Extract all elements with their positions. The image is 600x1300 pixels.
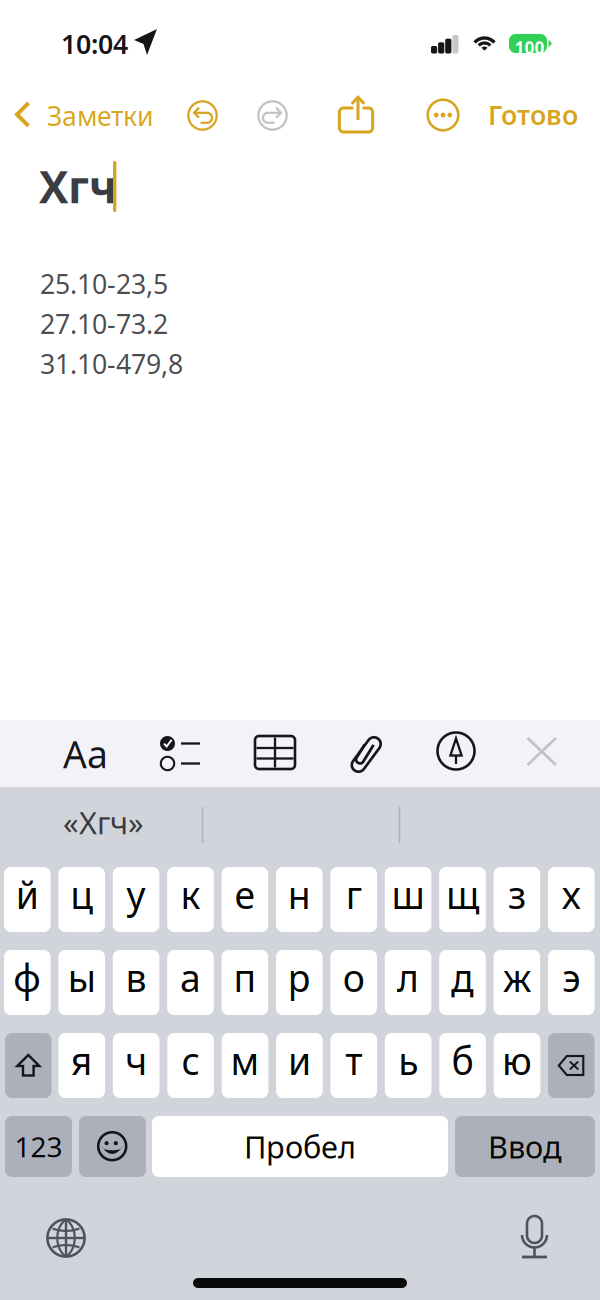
- button[interactable]: Markup: [435, 729, 479, 775]
- button[interactable]: д: [439, 950, 486, 1015]
- button[interactable]: н: [276, 867, 323, 932]
- staticText: р: [288, 953, 311, 1002]
- button[interactable]: г: [330, 867, 377, 932]
- button[interactable]: More options: [425, 97, 461, 133]
- button[interactable]: ы: [58, 950, 105, 1015]
- button[interactable]: Emoji: [79, 1116, 146, 1177]
- staticText: э: [562, 953, 580, 1002]
- button[interactable]: э: [548, 950, 595, 1015]
- button[interactable]: Checklist: [159, 734, 201, 772]
- button[interactable]: и: [276, 1033, 323, 1098]
- staticText: Aa: [63, 729, 108, 779]
- staticText: м: [230, 1036, 259, 1085]
- staticText: у: [127, 870, 146, 919]
- button[interactable]: з: [494, 867, 540, 932]
- staticText: ы: [68, 953, 96, 1002]
- button[interactable]: о: [330, 950, 377, 1015]
- staticText: ф: [13, 953, 41, 1002]
- button[interactable]: ч: [113, 1033, 159, 1098]
- button[interactable]: ю: [494, 1033, 540, 1098]
- staticText: к: [180, 870, 200, 919]
- staticText: г: [346, 870, 362, 919]
- button[interactable]: ц: [58, 867, 105, 932]
- staticText: ж: [503, 953, 531, 1002]
- button[interactable]: Switch keyboard: [46, 1218, 86, 1258]
- staticText: л: [397, 953, 419, 1002]
- button[interactable]: Пробел: [152, 1116, 448, 1177]
- staticText: и: [288, 1036, 311, 1085]
- staticText: 100: [514, 36, 544, 59]
- staticText: с: [182, 1036, 200, 1085]
- button[interactable]: а: [167, 950, 214, 1015]
- button[interactable]: Table: [255, 736, 296, 770]
- button[interactable]: Aa: [63, 729, 117, 779]
- button[interactable]: п: [222, 950, 268, 1015]
- button[interactable]: й: [4, 867, 51, 932]
- staticText: Хгч: [39, 157, 117, 215]
- button[interactable]: я: [58, 1033, 105, 1098]
- staticText: 31.10-479,8: [40, 346, 183, 381]
- button[interactable]: ь: [385, 1033, 431, 1098]
- staticText: ц: [70, 870, 93, 919]
- staticText: щ: [446, 870, 479, 919]
- button[interactable]: в: [113, 950, 159, 1015]
- button[interactable]: Share: [343, 93, 379, 139]
- button[interactable]: м: [222, 1033, 268, 1098]
- staticText: я: [71, 1036, 93, 1085]
- staticText: а: [180, 953, 201, 1002]
- staticText: 27.10-73.2: [40, 306, 168, 341]
- staticText: 123: [14, 1128, 62, 1165]
- button[interactable]: Заметки: [6, 92, 158, 137]
- button[interactable]: к: [167, 867, 214, 932]
- staticText: т: [345, 1036, 362, 1085]
- staticText: ч: [125, 1036, 147, 1085]
- staticText: ю: [502, 1036, 532, 1085]
- button[interactable]: т: [330, 1033, 377, 1098]
- button[interactable]: Delete: [548, 1033, 595, 1098]
- staticText: в: [126, 953, 147, 1002]
- staticText: е: [234, 870, 255, 919]
- staticText: й: [16, 870, 39, 919]
- button[interactable]: Готово: [488, 92, 596, 137]
- button[interactable]: у: [113, 867, 159, 932]
- staticText: о: [343, 953, 365, 1002]
- button[interactable]: ф: [4, 950, 51, 1015]
- staticText: п: [233, 953, 256, 1002]
- button[interactable]: Attach file: [351, 737, 387, 775]
- staticText: д: [451, 953, 474, 1002]
- button[interactable]: р: [276, 950, 323, 1015]
- button[interactable]: с: [167, 1033, 214, 1098]
- staticText: Заметки: [47, 98, 154, 133]
- button[interactable]: б: [439, 1033, 486, 1098]
- button[interactable]: «Хгч»: [63, 802, 145, 840]
- button[interactable]: л: [385, 950, 431, 1015]
- staticText: з: [508, 870, 526, 919]
- staticText: б: [452, 1036, 474, 1085]
- button[interactable]: Shift: [5, 1033, 52, 1098]
- button[interactable]: Ввод: [455, 1116, 595, 1177]
- button[interactable]: 123: [5, 1116, 72, 1177]
- staticText: ь: [398, 1036, 418, 1085]
- staticText: х: [562, 870, 581, 919]
- staticText: ш: [392, 870, 425, 919]
- staticText: н: [288, 870, 311, 919]
- staticText: «Хгч»: [63, 802, 144, 843]
- staticText: 25.10-23,5: [40, 266, 168, 301]
- button[interactable]: х: [548, 867, 595, 932]
- staticText: Готово: [488, 97, 578, 132]
- button[interactable]: Dictate: [513, 1213, 557, 1261]
- staticText: Пробел: [244, 1126, 356, 1167]
- button[interactable]: Undo: [187, 100, 218, 131]
- staticText: 10:04: [61, 26, 128, 61]
- staticText: Ввод: [488, 1126, 562, 1167]
- button[interactable]: Hide keyboard: [525, 735, 559, 769]
- button[interactable]: щ: [439, 867, 486, 932]
- button[interactable]: Redo: [257, 100, 288, 131]
- button[interactable]: ж: [494, 950, 540, 1015]
- button[interactable]: е: [222, 867, 268, 932]
- button[interactable]: ш: [385, 867, 431, 932]
